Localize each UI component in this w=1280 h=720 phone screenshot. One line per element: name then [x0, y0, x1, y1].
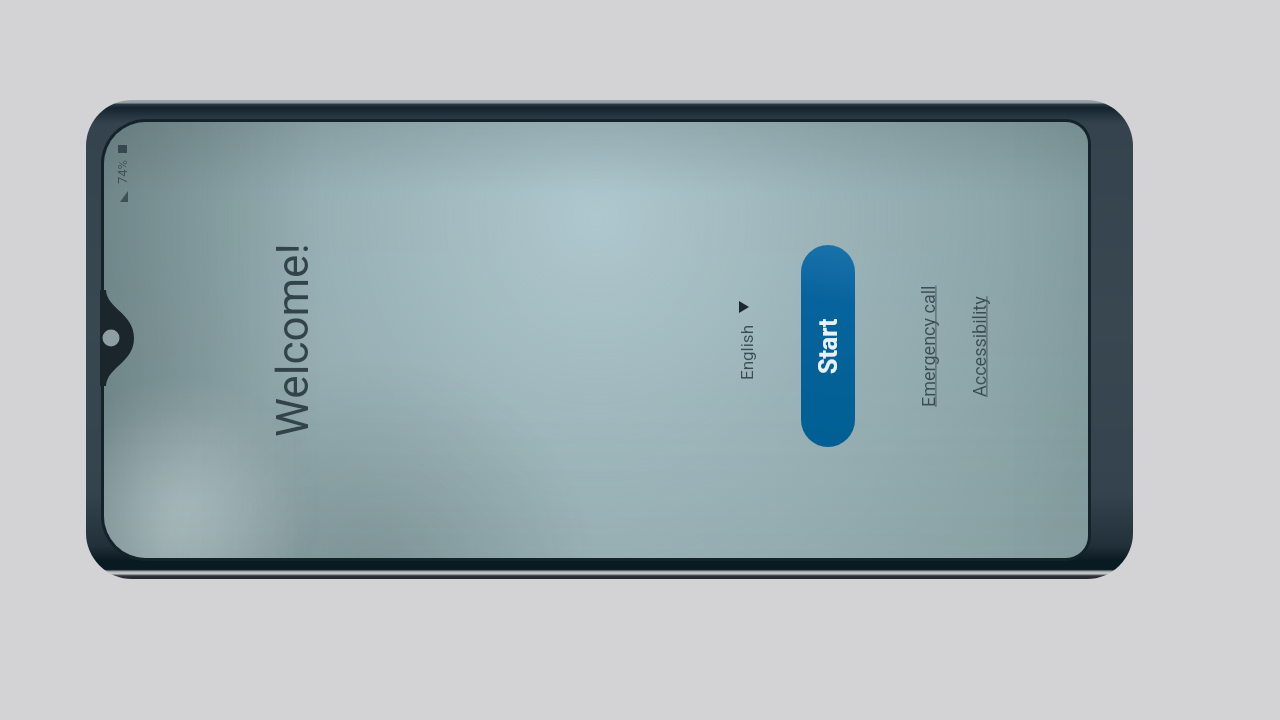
staticText: Accessibility	[969, 296, 990, 397]
staticText: English	[737, 324, 757, 380]
staticText: Start	[814, 318, 843, 374]
button[interactable]: Emergency call	[911, 276, 945, 416]
staticText: 74%	[115, 159, 130, 184]
other: Front camera	[100, 290, 134, 386]
button[interactable]: Start	[801, 245, 855, 447]
button[interactable]: English	[733, 295, 761, 387]
button[interactable]: Accessibility	[962, 276, 996, 416]
staticText: Emergency call	[918, 285, 939, 407]
staticText: Welcome!	[267, 243, 319, 437]
